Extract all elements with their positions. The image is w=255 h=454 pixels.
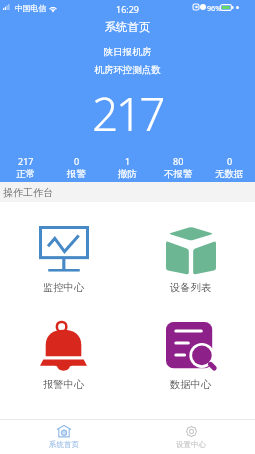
button[interactable]: 1 xyxy=(102,155,153,180)
staticText: 96% xyxy=(207,3,222,13)
staticText: 报警 xyxy=(67,168,86,180)
staticText: 系统首页 xyxy=(49,440,79,449)
button[interactable]: 报警中心 xyxy=(0,298,127,419)
staticText: 报警中心 xyxy=(43,378,85,391)
staticText: 217 xyxy=(0,82,255,145)
button[interactable]: 80 xyxy=(153,155,204,180)
staticText: 16:29 xyxy=(116,3,140,15)
staticText: 操作工作台 xyxy=(3,186,53,199)
staticText: 中国电信 xyxy=(15,3,47,13)
staticText: 监控中心 xyxy=(43,281,85,294)
staticText: 陕日报机房 xyxy=(0,46,255,58)
staticText: 80 xyxy=(173,155,184,167)
staticText: 设置中心 xyxy=(176,440,206,449)
button[interactable]: 0 xyxy=(204,155,255,180)
button[interactable]: 设置中心 xyxy=(127,420,255,454)
button[interactable]: 设备列表 xyxy=(127,202,255,298)
button[interactable]: 监控中心 xyxy=(0,202,127,298)
button[interactable]: 217 xyxy=(0,155,51,180)
staticText: 撤防 xyxy=(118,168,137,180)
staticText: 0 xyxy=(227,155,233,167)
staticText: 不报警 xyxy=(164,168,193,180)
staticText: 系统首页 xyxy=(0,20,255,34)
button[interactable]: 0 xyxy=(51,155,102,180)
staticText: 设备列表 xyxy=(170,281,212,294)
button[interactable]: 数据中心 xyxy=(127,298,255,419)
button[interactable]: 系统首页 xyxy=(0,420,127,454)
staticText: 机房环控测点数 xyxy=(0,64,255,76)
staticText: 无数据 xyxy=(215,168,244,180)
staticText: 数据中心 xyxy=(170,378,212,391)
staticText: 0 xyxy=(74,155,80,167)
staticText: 正常 xyxy=(16,168,35,180)
staticText: 217 xyxy=(18,155,34,167)
staticText: 1 xyxy=(125,155,131,167)
